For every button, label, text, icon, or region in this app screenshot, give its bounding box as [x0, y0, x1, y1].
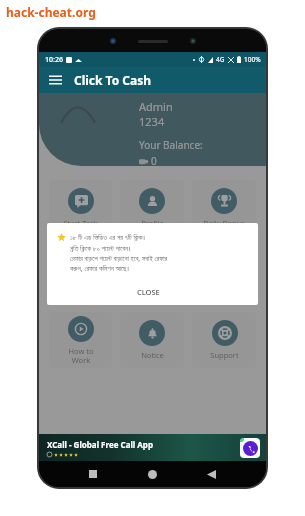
button[interactable]: Profile — [120, 180, 184, 236]
staticText: Wallet — [141, 284, 163, 294]
button[interactable]: Start Task — [49, 180, 112, 236]
button[interactable]: Open navigation menu — [46, 71, 64, 89]
staticText: 1234 — [139, 114, 165, 129]
button[interactable]: CLOSE — [129, 283, 168, 301]
staticText: XCall - Global Free Call App — [47, 439, 153, 450]
button[interactable]: Wallet — [120, 246, 184, 302]
staticText: hack-cheat.org — [6, 4, 96, 20]
staticText: 100% — [244, 55, 261, 64]
staticText: Profile — [141, 218, 164, 228]
staticText: 10:26 — [45, 55, 63, 65]
staticText: How to Work — [68, 346, 94, 365]
button[interactable]: Daily Bonus — [192, 180, 256, 236]
staticText: Daily Bonus — [203, 218, 245, 228]
staticText: ১৮ টি এড ভিডিও এর পর ৭টি ক্লিক। প্রতি ক্… — [70, 233, 168, 273]
other: Back — [207, 470, 216, 479]
staticText: 0 — [151, 154, 157, 166]
button[interactable]: How to Work — [49, 312, 112, 368]
other: Home — [148, 470, 157, 479]
staticText: Notice — [141, 350, 164, 360]
staticText: Admin — [139, 99, 173, 114]
staticText: Click To Cash — [74, 72, 152, 88]
button[interactable]: Notice — [120, 312, 184, 368]
staticText: Start Task — [63, 218, 98, 228]
staticText: 4G — [216, 55, 225, 64]
button[interactable]: Support — [192, 312, 256, 368]
staticText: CLOSE — [137, 287, 160, 297]
button[interactable]: XCall - Global Free Call App — [39, 434, 266, 461]
staticText: Your Balance: — [139, 138, 203, 152]
button[interactable]: Leader — [49, 246, 112, 302]
staticText: Support — [210, 350, 239, 360]
